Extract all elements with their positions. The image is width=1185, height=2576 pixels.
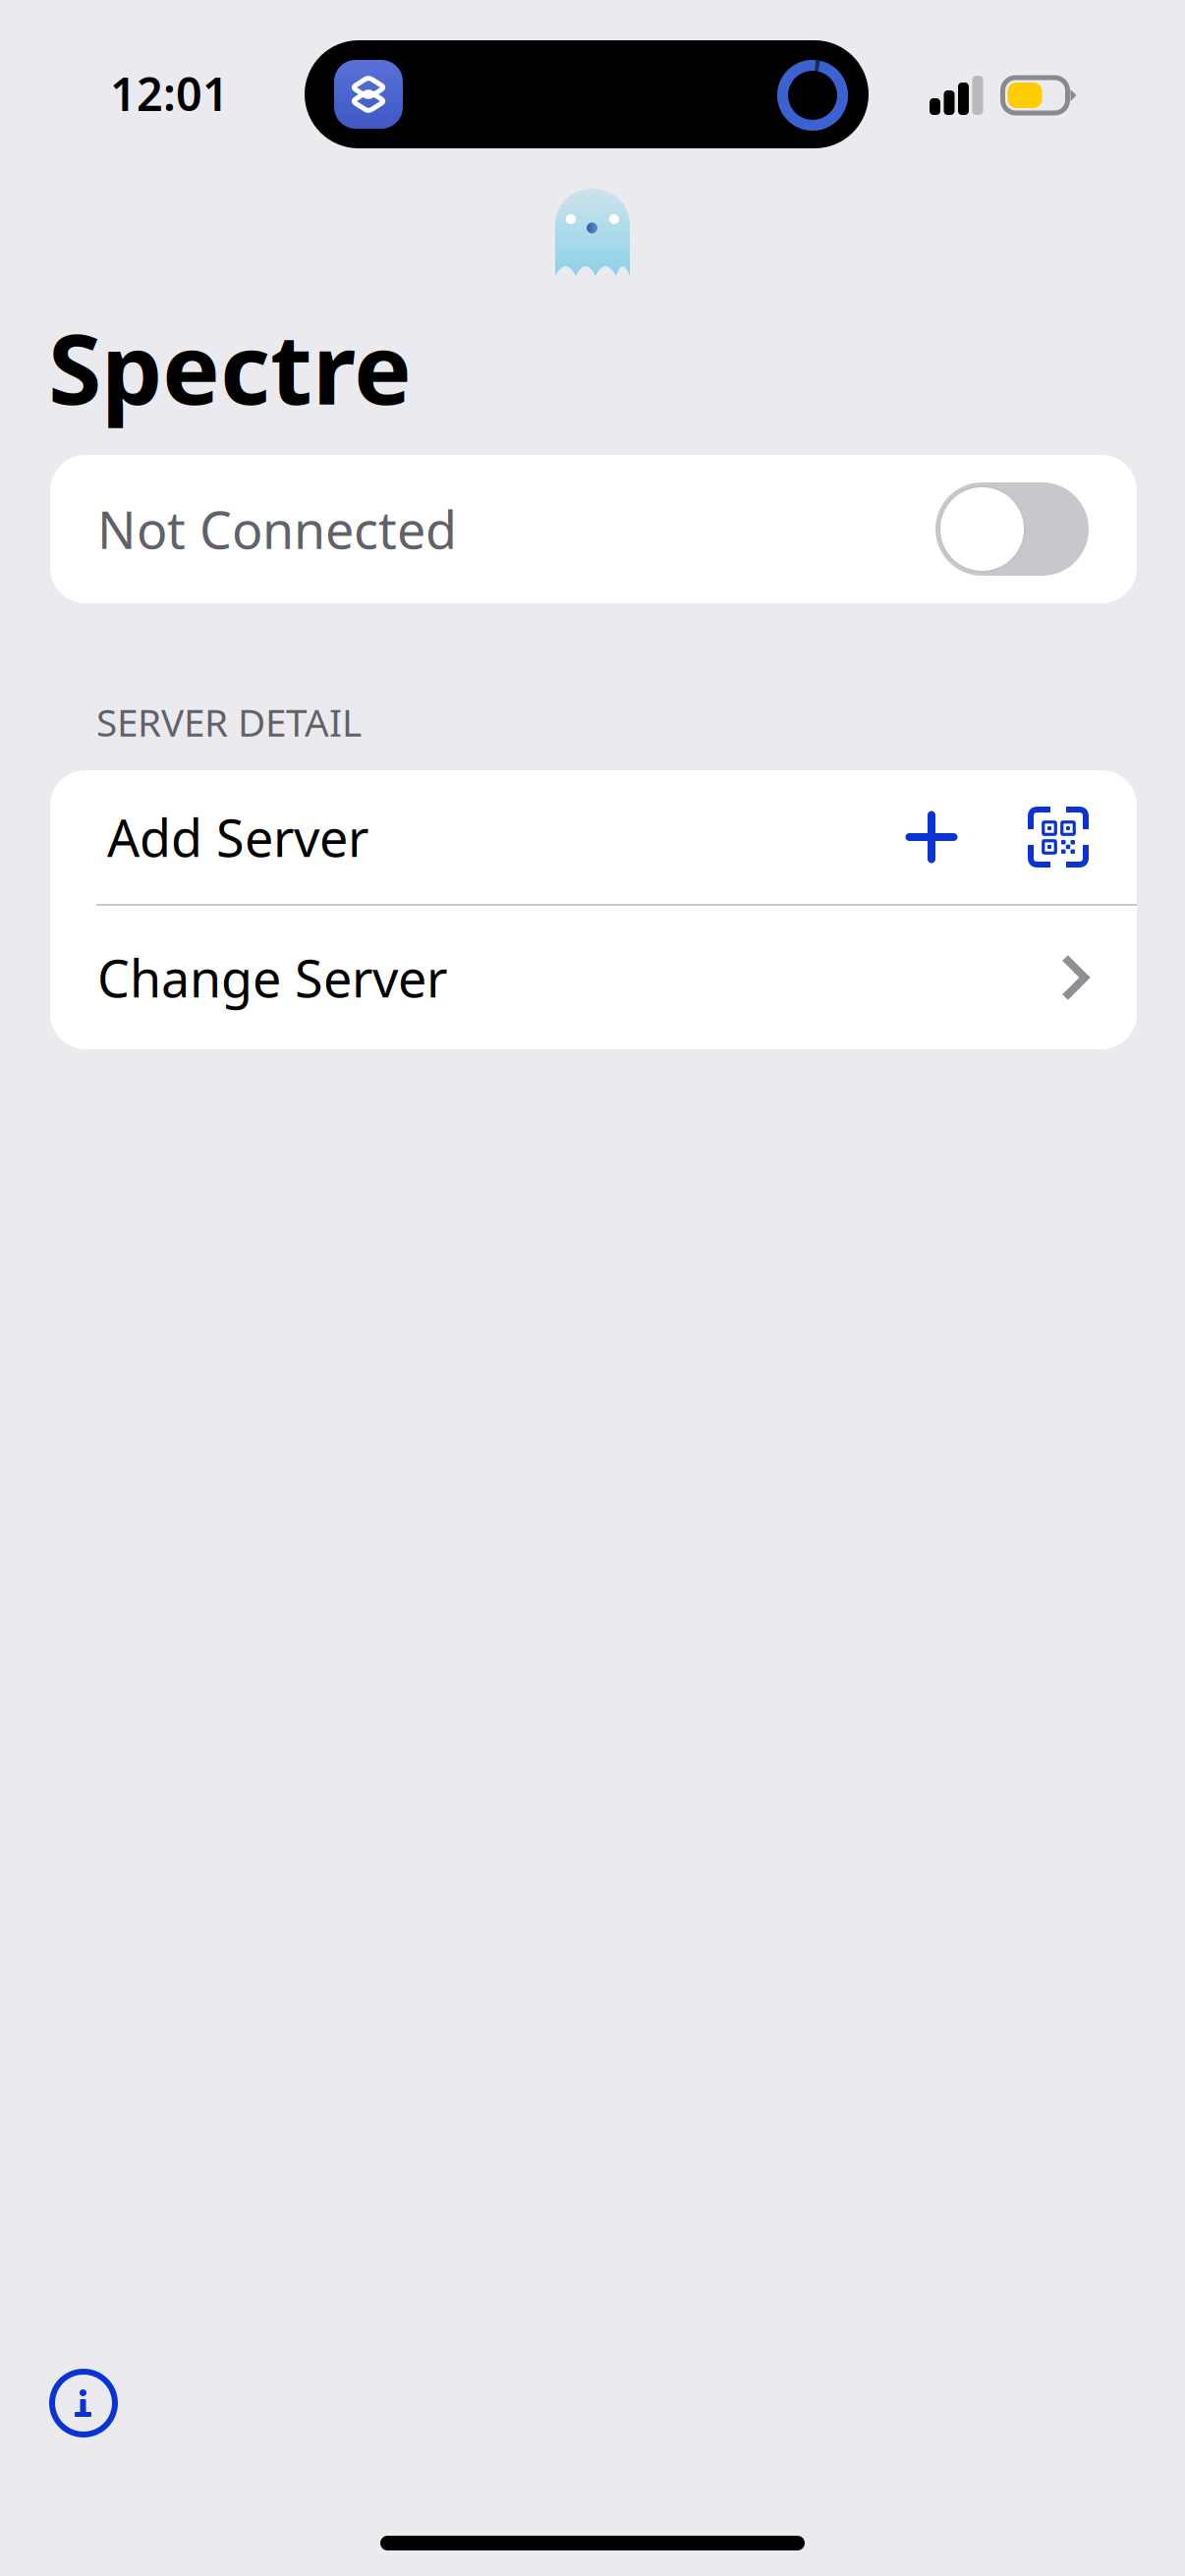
staticText: 12:01 bbox=[110, 63, 229, 124]
staticText: Add Server bbox=[107, 803, 368, 871]
button[interactable]: Not Connected bbox=[50, 455, 1137, 603]
button[interactable]: About Spectre bbox=[51, 2371, 116, 2436]
staticText: Spectre bbox=[48, 303, 412, 431]
staticText: Not Connected bbox=[97, 495, 457, 563]
staticText: Change Server bbox=[97, 944, 447, 1012]
button[interactable]: Change Server bbox=[50, 906, 1137, 1049]
staticText: SERVER DETAIL bbox=[96, 697, 362, 747]
button[interactable]: Add Server bbox=[50, 770, 1137, 904]
